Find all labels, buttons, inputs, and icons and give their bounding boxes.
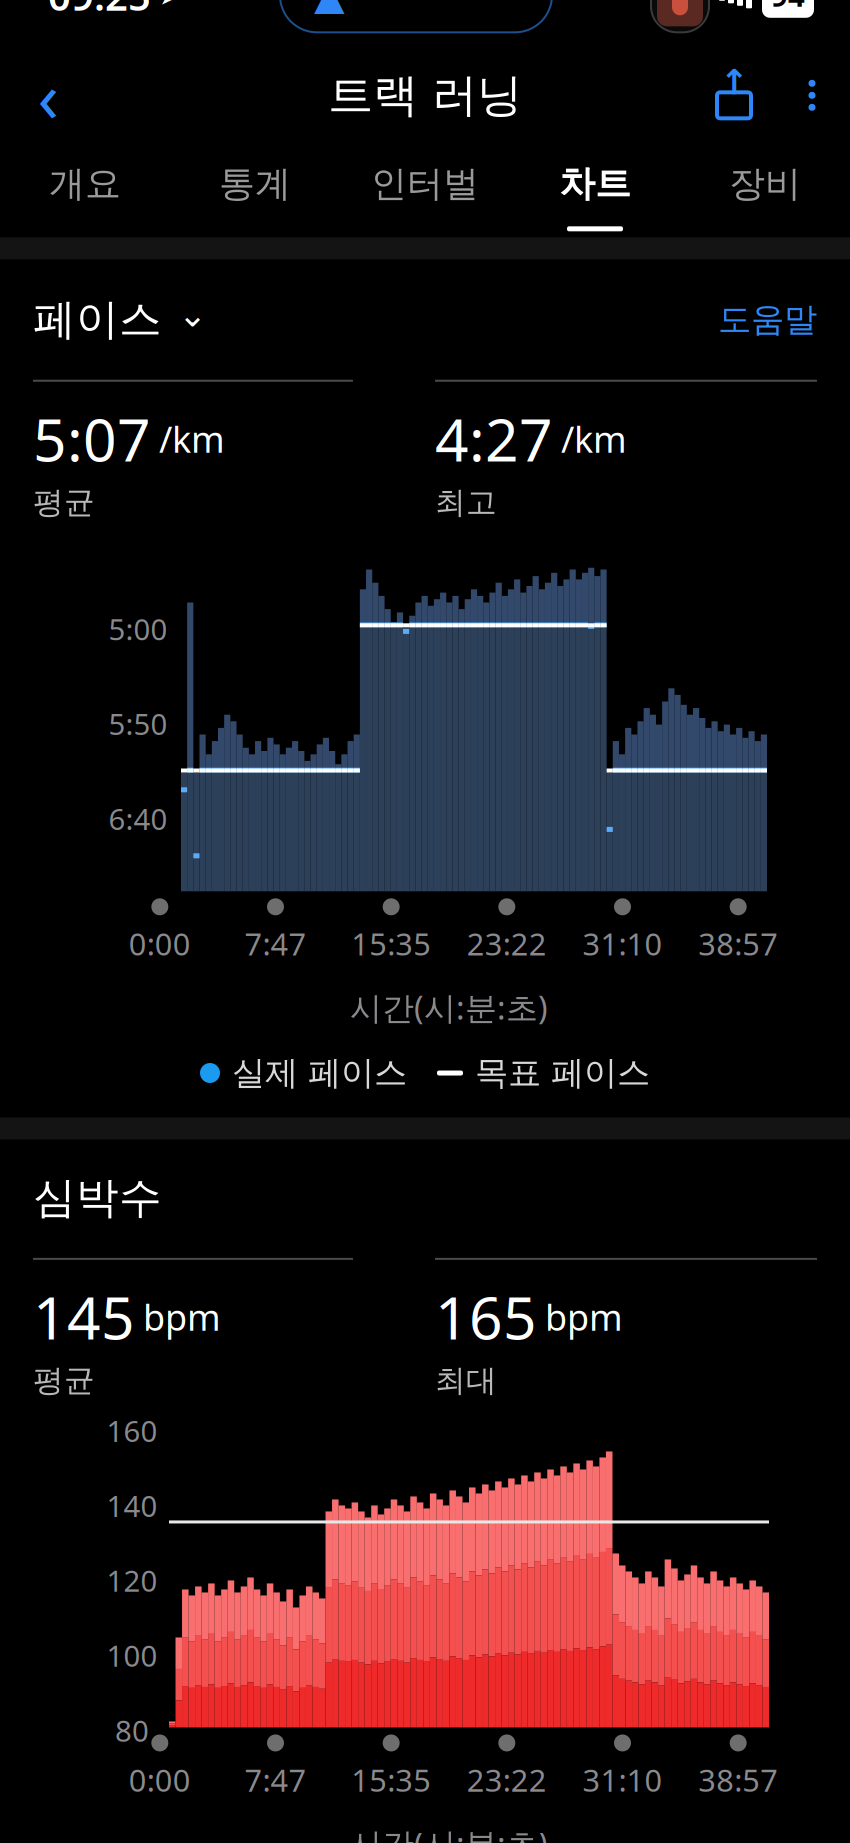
staticText: bpm [143, 1293, 221, 1341]
button[interactable]: 공유 [694, 55, 774, 135]
staticText: 시간(시:분:초) [350, 986, 548, 1028]
staticText: 23:22 [467, 1759, 547, 1800]
staticText: 100 [106, 1636, 157, 1675]
staticText: 5:00 [108, 609, 167, 648]
button[interactable]: 개요 [0, 141, 170, 237]
staticText: ⌄ [178, 295, 207, 334]
staticText: ‹ [37, 49, 58, 141]
staticText: /km [561, 415, 627, 463]
staticText: 통계 [219, 162, 291, 206]
button[interactable]: 뒤로 [0, 55, 96, 135]
staticText: ↑ [719, 63, 748, 102]
button[interactable]: 인터벌 [340, 141, 510, 237]
staticText: 평균 [33, 1362, 95, 1399]
staticText: 0:00 [129, 923, 191, 964]
staticText: 도움말 [718, 299, 817, 340]
button[interactable]: 도움말 [718, 299, 817, 340]
staticText: 인터벌 [371, 162, 479, 206]
button[interactable]: 통계 [170, 141, 340, 237]
staticText: ▲ [314, 0, 345, 18]
staticText: 차트 [559, 162, 631, 206]
staticText: 120 [106, 1561, 157, 1600]
staticText: 38:57 [698, 923, 778, 964]
staticText: 장비 [729, 162, 801, 206]
staticText: 7:47 [244, 1759, 306, 1800]
staticText: 15:35 [351, 1759, 431, 1800]
staticText: 심박수 [33, 1171, 162, 1224]
staticText: 94 [771, 0, 805, 15]
button[interactable]: 더보기 [774, 55, 850, 135]
staticText: 145 [33, 1278, 135, 1356]
staticText: 4:27 [435, 400, 553, 478]
staticText: bpm [545, 1293, 623, 1341]
staticText: 09:25 [48, 0, 151, 22]
staticText: 31:10 [582, 1759, 662, 1800]
button[interactable]: 페이스 [33, 293, 207, 346]
button[interactable]: 차트 [510, 141, 680, 237]
staticText: 트랙 러닝 [328, 67, 522, 123]
staticText: 15:35 [351, 923, 431, 964]
staticText: 165 [435, 1278, 537, 1356]
staticText: 목표 페이스 [475, 1052, 650, 1093]
staticText: 31:10 [582, 923, 662, 964]
staticText: 최고 [435, 484, 497, 521]
staticText: ➤ [159, 0, 181, 10]
staticText: /km [159, 415, 225, 463]
staticText: 평균 [33, 484, 95, 521]
staticText: 페이스 [33, 293, 162, 346]
staticText: 시간(시:분:초) [350, 1822, 548, 1843]
staticText: 5:07 [33, 400, 151, 478]
staticText: 160 [106, 1411, 157, 1450]
staticText: 80 [115, 1711, 149, 1750]
staticText: 23:22 [467, 923, 547, 964]
staticText: 최대 [435, 1362, 497, 1399]
button[interactable]: 장비 [680, 141, 850, 237]
staticText: 7:47 [244, 923, 306, 964]
staticText: 6:40 [108, 799, 167, 838]
staticText: 개요 [49, 162, 121, 206]
staticText: 5:50 [108, 704, 167, 743]
staticText: 140 [106, 1486, 157, 1525]
staticText: 0:00 [129, 1759, 191, 1800]
staticText: 실제 페이스 [232, 1052, 407, 1093]
staticText: 38:57 [698, 1759, 778, 1800]
